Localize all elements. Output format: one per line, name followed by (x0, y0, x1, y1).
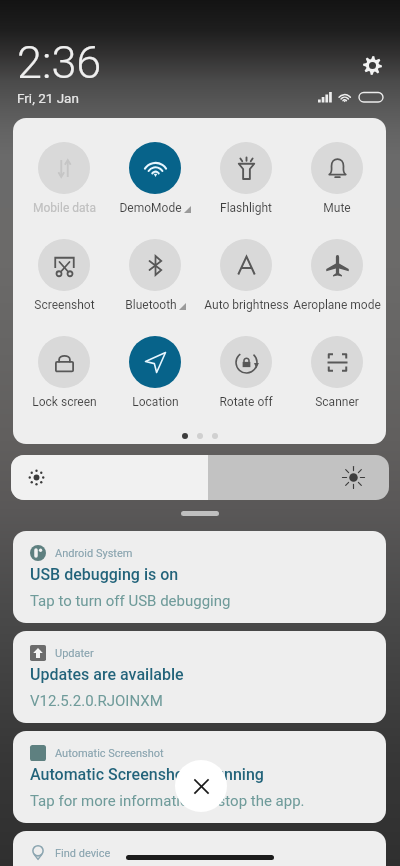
button[interactable] (201, 239, 291, 317)
staticText: Find device (55, 847, 111, 860)
staticText: Rotate off (219, 395, 273, 409)
button[interactable] (110, 239, 200, 317)
button[interactable]: Brightness (11, 455, 389, 500)
staticText: Bluetooth (125, 298, 177, 312)
button[interactable] (110, 336, 200, 414)
button[interactable]: Find device (13, 831, 386, 866)
staticText: Flashlight (220, 201, 272, 215)
button[interactable] (110, 142, 200, 220)
staticText: Fri, 21 Jan (17, 90, 79, 106)
staticText: Android System (55, 547, 133, 560)
staticText: Tap for more information to stop the app… (30, 792, 305, 810)
button[interactable] (292, 142, 382, 220)
button[interactable]: Android System (13, 531, 386, 623)
staticText: 2:36 (17, 36, 102, 89)
button[interactable] (201, 336, 291, 414)
staticText: Automatic Screenshot is running (30, 765, 264, 784)
staticText: Screenshot (34, 298, 95, 312)
staticText: Auto brightness (204, 298, 289, 312)
button[interactable]: Updater (13, 631, 386, 723)
button[interactable]: Settings (358, 51, 386, 79)
button[interactable] (292, 336, 382, 414)
staticText: V12.5.2.0.RJOINXM (30, 692, 163, 710)
button[interactable] (19, 239, 109, 317)
button[interactable] (19, 142, 109, 220)
staticText: Updater (55, 647, 94, 660)
staticText: USB debugging is on (30, 565, 179, 584)
button[interactable]: Close notification shade (175, 760, 227, 812)
button[interactable] (19, 336, 109, 414)
staticText: Automatic Screenshot (55, 747, 164, 760)
staticText: Lock screen (32, 395, 97, 409)
staticText: Aeroplane mode (293, 298, 381, 312)
button[interactable] (292, 239, 382, 317)
staticText: Scanner (315, 395, 359, 409)
staticText: Mute (323, 201, 351, 215)
button[interactable]: Automatic Screenshot (13, 731, 386, 823)
staticText: Mobile data (33, 201, 96, 215)
staticText: Location (132, 395, 179, 409)
staticText: DemoMode (119, 201, 182, 215)
button[interactable] (201, 142, 291, 220)
staticText: Tap to turn off USB debugging (30, 592, 231, 610)
staticText: Updates are available (30, 665, 184, 684)
